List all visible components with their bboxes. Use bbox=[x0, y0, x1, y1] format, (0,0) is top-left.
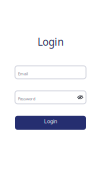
staticText: Login bbox=[44, 118, 57, 125]
button[interactable]: Email bbox=[15, 66, 86, 79]
button[interactable]: Password bbox=[15, 91, 86, 104]
staticText: Email bbox=[18, 71, 28, 76]
button[interactable]: Show password bbox=[77, 96, 83, 99]
staticText: Password bbox=[18, 96, 35, 101]
button[interactable]: Login bbox=[15, 116, 86, 130]
staticText: Login bbox=[37, 35, 63, 49]
